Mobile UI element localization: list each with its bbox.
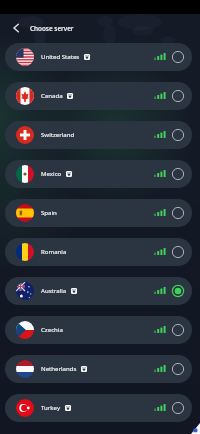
button[interactable]: United States xyxy=(5,43,192,71)
staticText: Canada xyxy=(41,91,63,99)
staticText: Netherlands xyxy=(41,364,77,372)
staticText: Romania xyxy=(41,247,67,255)
staticText: Switzerland xyxy=(41,130,75,138)
staticText: Choose server xyxy=(30,24,74,33)
button[interactable]: Romania xyxy=(5,238,192,266)
staticText: Australia xyxy=(41,286,67,294)
button[interactable]: Switzerland xyxy=(5,121,192,149)
button[interactable]: Mexico xyxy=(5,160,192,188)
button[interactable]: Netherlands xyxy=(5,355,192,383)
staticText: Turkey xyxy=(41,403,61,411)
staticText: Czechia xyxy=(41,325,63,333)
button[interactable]: Back xyxy=(5,17,27,39)
button[interactable]: Spain xyxy=(5,199,192,227)
staticText: Mexico xyxy=(41,169,62,177)
staticText: Spain xyxy=(41,208,57,216)
button[interactable]: Canada xyxy=(5,82,192,110)
button[interactable]: Turkey xyxy=(5,394,192,422)
button[interactable]: Czechia xyxy=(5,316,192,344)
button[interactable]: Australia xyxy=(5,277,192,305)
staticText: United States xyxy=(41,52,80,60)
